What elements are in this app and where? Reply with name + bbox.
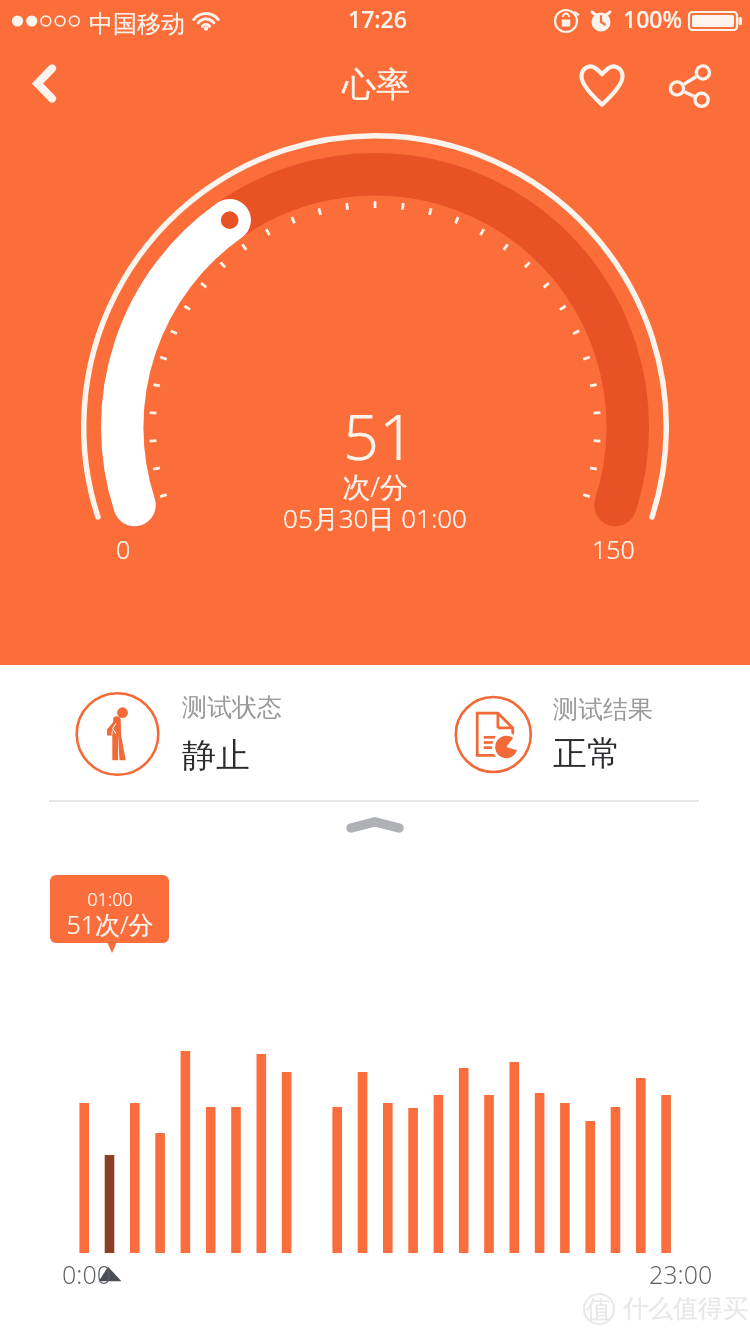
staticText: 51次/分: [66, 907, 154, 941]
staticText: 什么值得买: [623, 1293, 748, 1324]
button[interactable]: 测试状态: [70, 686, 360, 784]
staticText: 中国移动: [89, 9, 185, 39]
button[interactable]: 01:00: [50, 875, 169, 943]
staticText: 23:00: [649, 1257, 713, 1291]
staticText: 值: [586, 1294, 611, 1325]
staticText: 测试状态: [182, 692, 282, 723]
staticText: 17:26: [348, 3, 407, 34]
staticText: 150: [592, 532, 635, 566]
button[interactable]: Back: [8, 44, 80, 116]
button[interactable]: 心率: [342, 63, 410, 106]
staticText: 51: [343, 393, 415, 479]
button[interactable]: Share: [658, 52, 722, 116]
button[interactable]: Favorite: [570, 52, 634, 116]
staticText: 01:00: [87, 887, 133, 912]
button[interactable]: 测试结果: [446, 686, 736, 784]
staticText: 100%: [623, 3, 683, 34]
staticText: 0:00: [62, 1257, 111, 1291]
staticText: 05月30日 01:00: [283, 500, 467, 536]
staticText: 静止: [182, 734, 250, 777]
staticText: 次/分: [342, 467, 408, 505]
staticText: 0: [116, 532, 131, 566]
staticText: 正常: [553, 732, 621, 775]
staticText: 测试结果: [553, 694, 653, 725]
